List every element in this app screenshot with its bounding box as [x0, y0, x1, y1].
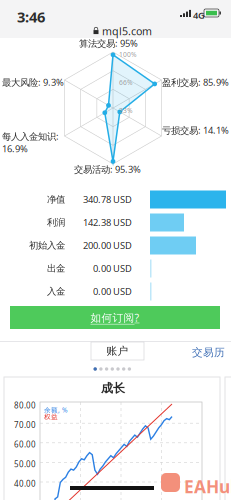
staticText: 3:46 — [17, 7, 45, 26]
staticText: 4G — [193, 9, 205, 21]
staticText: 初始入金 — [29, 240, 65, 251]
button[interactable]: 交易历 — [192, 346, 225, 359]
staticText: 200.00 USD — [83, 239, 132, 252]
staticText: 算法交易: 95% — [79, 37, 138, 49]
staticText: 80.00 — [14, 400, 36, 411]
staticText: 亏损交易: 14.1% — [162, 124, 229, 136]
staticText: 66% — [119, 78, 133, 87]
staticText: 每人入金知识: 16.9% — [2, 130, 59, 155]
staticText: 50.00 — [14, 459, 36, 469]
staticText: 出金 — [47, 263, 65, 274]
staticText: 净值 — [47, 194, 65, 205]
staticText: 100% — [119, 50, 137, 59]
staticText: 最大风险: 9.3% — [2, 76, 64, 88]
staticText: 40.00 — [14, 478, 36, 489]
button[interactable]: 账户 — [91, 342, 144, 360]
staticText: 权益 — [44, 413, 58, 421]
staticText: 142.38 USD — [83, 216, 132, 229]
staticText: 盈利交易: 85.9% — [162, 76, 229, 88]
staticText: 账户 — [106, 344, 128, 357]
staticText: 60.00 — [14, 439, 36, 450]
staticText: 0.00 USD — [93, 262, 132, 275]
staticText: 70.00 — [14, 420, 36, 430]
button[interactable]: 如何订阅? — [10, 306, 220, 329]
staticText: 成长 — [101, 381, 125, 396]
staticText: 340.78 USD — [83, 193, 132, 206]
staticText: EAHub — [184, 475, 231, 498]
staticText: 33% — [119, 106, 133, 115]
staticText: 利润 — [47, 217, 65, 228]
staticText: 如何订阅? — [90, 310, 139, 325]
staticText: 交易活动: 95.3% — [74, 163, 141, 175]
staticText: 余额, % — [44, 405, 68, 414]
staticText: 交易历 — [192, 346, 225, 359]
staticText: mql5.com — [102, 24, 152, 38]
staticText: 入金 — [47, 286, 65, 297]
staticText: 0.00 USD — [93, 285, 132, 298]
